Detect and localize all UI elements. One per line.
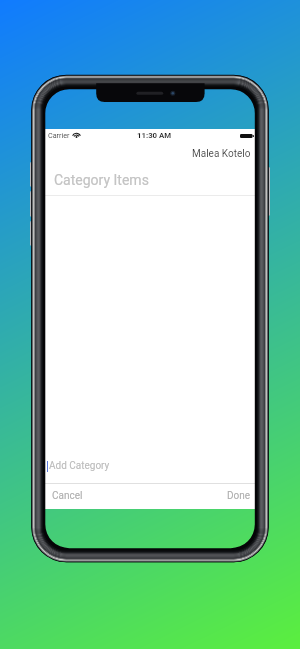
button[interactable]: Add Category [45,451,255,481]
staticText: 11:30 AM [137,131,172,140]
staticText: Done [227,490,251,502]
button[interactable]: Cancel [52,490,83,502]
button[interactable]: Done [227,490,251,502]
button[interactable]: Malea Kotelo [45,142,255,163]
staticText: Carrier [48,131,70,139]
staticText: Add Category [49,460,110,472]
staticText: Cancel [52,490,83,502]
other: Wi-Fi [72,132,81,138]
staticText: Malea Kotelo [192,148,251,160]
staticText: Category Items [54,172,149,188]
other: Battery full [240,134,254,138]
